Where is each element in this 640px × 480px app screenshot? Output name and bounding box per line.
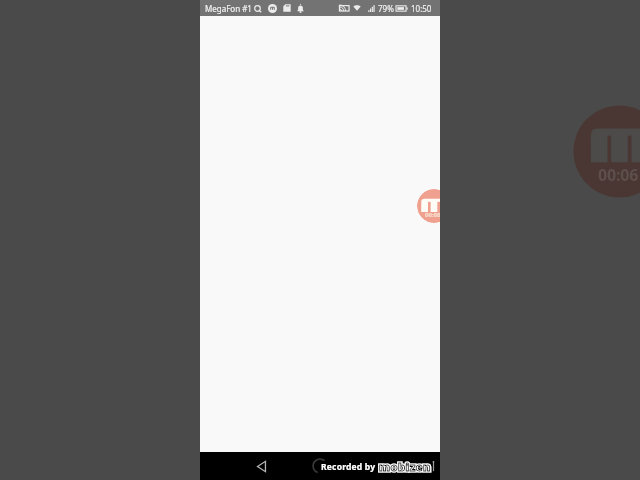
button[interactable]: Back — [250, 455, 272, 477]
staticText: 00:06 — [598, 164, 639, 186]
button[interactable]: Recorded by — [321, 459, 435, 474]
staticText: mobizen — [379, 459, 431, 474]
staticText: 79% — [378, 3, 394, 14]
staticText: mobizen — [379, 459, 431, 474]
staticText: MegaFon #1 — [205, 3, 252, 14]
staticText: mobizen — [379, 459, 431, 474]
staticText: 10:50 — [411, 3, 432, 14]
staticText: 00:06 — [425, 211, 440, 219]
button[interactable]: Home — [309, 455, 331, 477]
staticText: Recorded by — [321, 461, 376, 473]
button[interactable]: Mobizen recorder — [417, 189, 440, 223]
